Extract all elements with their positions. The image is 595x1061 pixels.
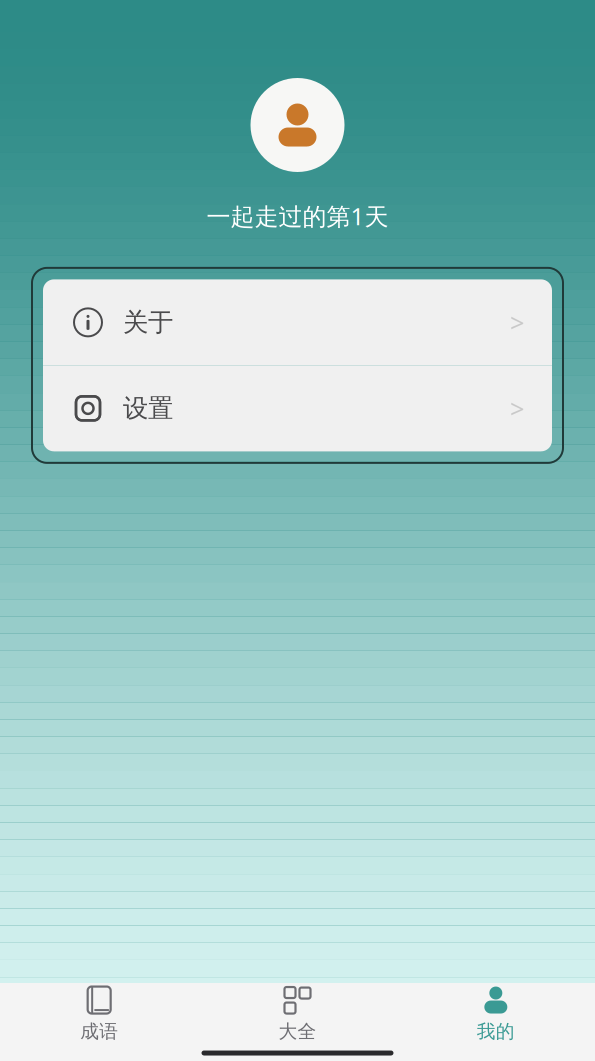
- staticText: >: [510, 306, 524, 339]
- button[interactable]: 设置: [43, 365, 552, 451]
- button[interactable]: 我的: [397, 983, 595, 1045]
- staticText: 大全: [278, 1020, 316, 1043]
- staticText: 一起走过的第1天: [206, 200, 388, 232]
- button[interactable]: 成语: [0, 983, 198, 1045]
- staticText: 设置: [123, 393, 173, 424]
- button[interactable]: 大全: [198, 983, 397, 1045]
- staticText: 我的: [477, 1020, 515, 1043]
- staticText: 成语: [80, 1020, 118, 1043]
- staticText: 关于: [123, 307, 173, 338]
- staticText: >: [510, 392, 524, 425]
- button[interactable]: 关于: [43, 279, 552, 365]
